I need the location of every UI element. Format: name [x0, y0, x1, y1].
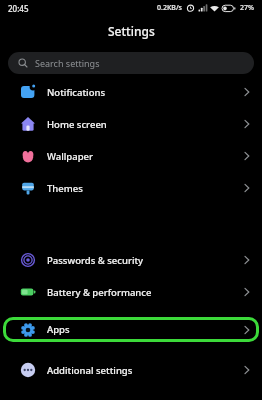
button[interactable]: Notifications [0, 76, 262, 108]
staticText: Battery & performance [47, 286, 152, 299]
staticText: Notifications [47, 86, 106, 99]
button[interactable]: Themes [0, 172, 262, 204]
button[interactable]: Search settings [8, 52, 254, 74]
button[interactable]: Home screen [0, 108, 262, 140]
staticText: Search settings [35, 57, 100, 69]
button[interactable]: Wallpaper [0, 140, 262, 172]
staticText: Themes [47, 182, 83, 195]
staticText: Passwords & security [47, 254, 144, 267]
staticText: 0.2KB/s [157, 3, 183, 13]
button[interactable]: Apps [3, 317, 259, 342]
staticText: Wallpaper [47, 150, 93, 163]
staticText: Home screen [47, 118, 107, 131]
button[interactable]: Passwords & security [0, 244, 262, 276]
staticText: 20:45 [8, 3, 29, 14]
staticText: Additional settings [47, 364, 133, 377]
staticText: Settings [108, 23, 155, 39]
staticText: Apps [47, 323, 70, 336]
button[interactable]: Battery & performance [0, 276, 262, 308]
button[interactable]: Additional settings [0, 354, 262, 386]
staticText: 27% [240, 3, 254, 13]
